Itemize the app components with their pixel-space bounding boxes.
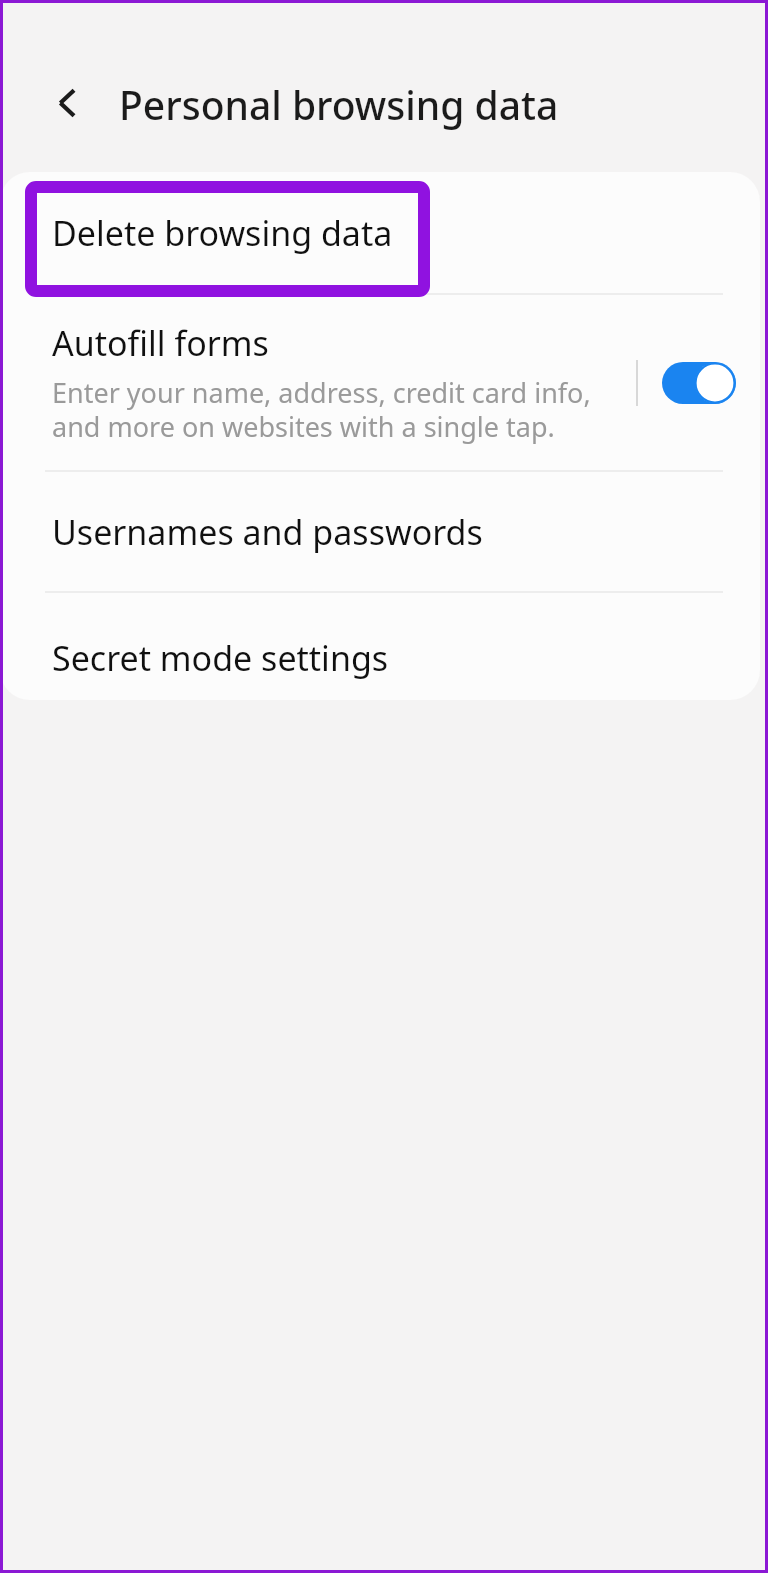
- button[interactable]: Back: [38, 71, 102, 135]
- button[interactable]: Delete browsing data: [0, 172, 760, 293]
- staticText: Secret mode settings: [52, 635, 389, 681]
- staticText: Personal browsing data: [119, 78, 559, 131]
- button[interactable]: Autofill forms: [0, 295, 760, 470]
- button[interactable]: Secret mode settings: [0, 593, 760, 700]
- button[interactable]: Usernames and passwords: [0, 472, 760, 591]
- staticText: Usernames and passwords: [52, 509, 483, 555]
- staticText: Autofill forms: [52, 320, 269, 366]
- staticText: Enter your name, address, credit card in…: [52, 374, 620, 445]
- button[interactable]: Autofill forms toggle, on: [638, 341, 760, 425]
- staticText: Delete browsing data: [52, 210, 393, 256]
